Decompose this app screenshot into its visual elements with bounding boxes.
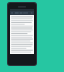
- button[interactable]: [10, 15, 34, 54]
- button[interactable]: Phone device: [7, 2, 37, 66]
- button[interactable]: Toolbar: [10, 11, 34, 15]
